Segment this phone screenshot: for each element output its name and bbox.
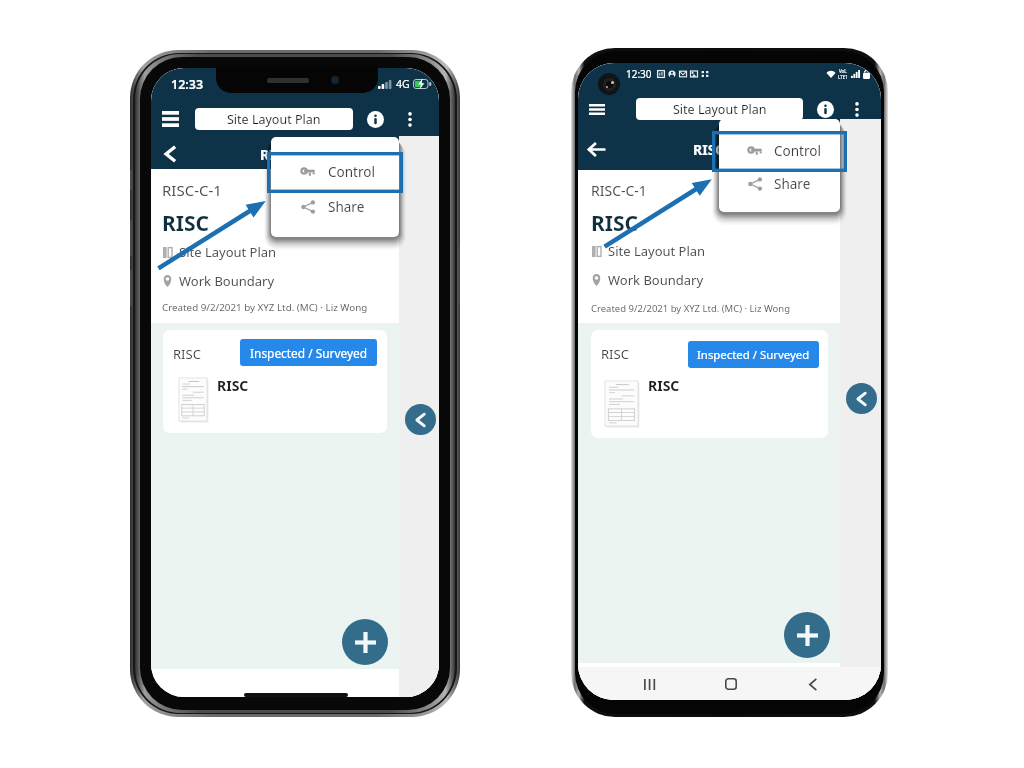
- button[interactable]: Add new: [342, 619, 388, 665]
- button[interactable]: Site Layout Plan: [195, 108, 353, 130]
- staticText: RISC: [591, 209, 638, 238]
- button[interactable]: Share: [271, 189, 399, 225]
- button[interactable]: Control: [271, 154, 399, 190]
- button[interactable]: Menu: [157, 106, 183, 132]
- staticText: Share: [328, 198, 365, 216]
- staticText: Share: [774, 175, 811, 193]
- staticText: RISC: [648, 376, 680, 395]
- button[interactable]: Back: [157, 141, 183, 167]
- button[interactable]: Collapse side panel: [846, 383, 877, 414]
- button[interactable]: Share: [719, 166, 840, 202]
- staticText: VoL: [839, 68, 847, 74]
- button[interactable]: More options: [848, 98, 866, 120]
- button[interactable]: Information: [364, 108, 386, 130]
- staticText: Site Layout Plan: [608, 242, 706, 260]
- button[interactable]: RISC: [591, 330, 828, 438]
- button[interactable]: Inspected / Surveyed: [688, 341, 819, 368]
- staticText: RISC: [693, 140, 725, 159]
- staticText: Inspected / Surveyed: [697, 347, 810, 363]
- button[interactable]: Add new: [784, 612, 830, 658]
- staticText: RISC: [162, 209, 209, 238]
- staticText: Created 9/2/2021 by XYZ Ltd. (MC) · Liz …: [591, 302, 791, 315]
- button[interactable]: Recent apps: [636, 671, 662, 697]
- staticText: Control: [328, 163, 375, 181]
- staticText: RISC: [260, 145, 292, 164]
- button[interactable]: Back: [800, 671, 826, 697]
- staticText: LTE1: [838, 74, 848, 80]
- staticText: 4G: [396, 77, 410, 91]
- staticText: 12:33: [171, 76, 204, 93]
- staticText: RISC: [173, 345, 201, 363]
- staticText: Work Boundary: [179, 272, 275, 290]
- staticText: RISC-C-1: [162, 180, 222, 200]
- button[interactable]: Site Layout Plan: [636, 98, 803, 120]
- staticText: Site Layout Plan: [227, 111, 321, 128]
- staticText: Inspected / Surveyed: [250, 345, 368, 361]
- staticText: 12:30: [626, 67, 652, 81]
- button[interactable]: Control: [719, 133, 840, 169]
- staticText: Control: [774, 142, 821, 160]
- button[interactable]: More options: [401, 108, 419, 130]
- staticText: RISC: [217, 376, 249, 395]
- button[interactable]: RISC: [163, 330, 387, 433]
- staticText: Created 9/2/2021 by XYZ Ltd. (MC) · Liz …: [162, 301, 368, 314]
- staticText: RISC: [601, 345, 629, 363]
- button[interactable]: Back: [584, 136, 610, 162]
- staticText: Work Boundary: [608, 271, 704, 289]
- staticText: Site Layout Plan: [673, 101, 767, 118]
- button[interactable]: Inspected / Surveyed: [240, 339, 377, 366]
- staticText: Site Layout Plan: [179, 243, 277, 261]
- button[interactable]: Home: [718, 671, 744, 697]
- button[interactable]: Menu: [584, 96, 610, 122]
- button[interactable]: Information: [814, 98, 836, 120]
- staticText: RISC-C-1: [591, 181, 647, 200]
- button[interactable]: Collapse side panel: [405, 404, 436, 435]
